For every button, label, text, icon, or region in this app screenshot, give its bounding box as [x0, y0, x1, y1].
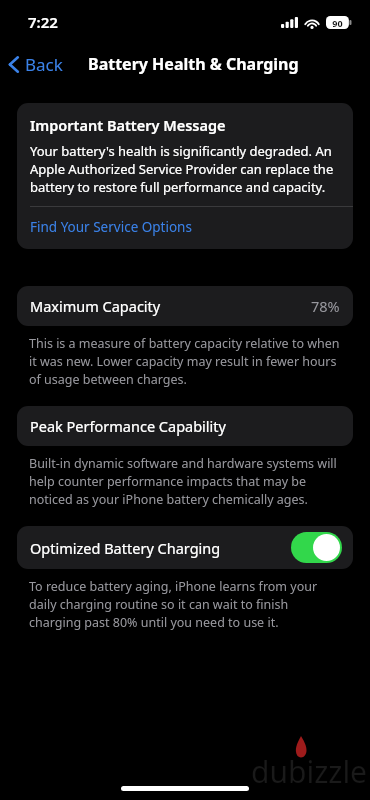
staticText: dubizzle	[251, 751, 368, 792]
staticText: Maximum Capacity	[30, 296, 161, 316]
button[interactable]: Maximum Capacity	[17, 286, 353, 326]
staticText: 7:22	[28, 12, 58, 32]
staticText: 78%	[311, 296, 340, 316]
button[interactable]: Optimized Battery Charging	[17, 526, 353, 569]
staticText: Your battery's health is significantly d…	[30, 142, 340, 196]
button[interactable]: Back	[0, 49, 71, 80]
button[interactable]: Find Your Service Options	[17, 207, 353, 249]
staticText: Peak Performance Capability	[30, 416, 226, 436]
staticText: Built-in dynamic software and hardware s…	[29, 455, 341, 508]
staticText: Optimized Battery Charging	[30, 538, 221, 558]
other: Cellular signal	[281, 17, 298, 28]
button[interactable]: Optimized Battery Charging toggle, on	[291, 532, 342, 563]
other: Wi-Fi	[304, 17, 320, 29]
button[interactable]: Peak Performance Capability	[17, 406, 353, 446]
staticText: Battery Health & Charging	[88, 53, 299, 75]
staticText: Back	[25, 53, 63, 76]
staticText: Find Your Service Options	[30, 218, 192, 236]
staticText: Important Battery Message	[30, 115, 226, 135]
staticText: 90	[332, 17, 343, 29]
staticText: This is a measure of battery capacity re…	[29, 335, 341, 388]
other: Battery 90 percent	[326, 16, 352, 29]
staticText: To reduce battery aging, iPhone learns f…	[29, 578, 341, 631]
